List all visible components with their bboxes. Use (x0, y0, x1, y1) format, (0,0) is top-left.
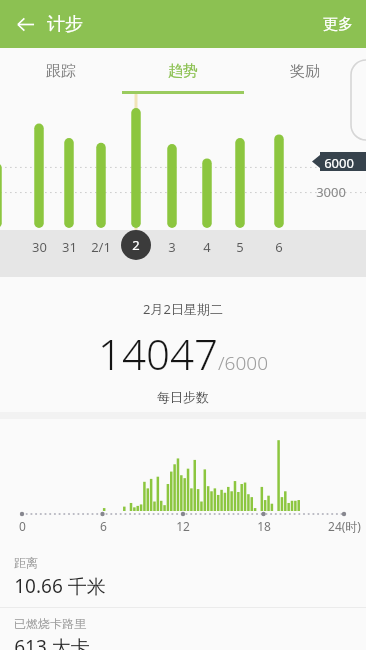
staticText: 2月2日星期二 (143, 300, 223, 318)
staticText: 14047 (98, 325, 218, 382)
staticText: 0 (19, 518, 26, 534)
staticText: 更多 (323, 15, 353, 34)
button[interactable]: 更多 (310, 4, 366, 45)
button[interactable]: 31 (53, 236, 85, 258)
staticText: 4 (203, 238, 211, 256)
staticText: 6 (100, 518, 107, 534)
staticText: 24(时) (328, 518, 361, 534)
button[interactable]: 5 (224, 236, 256, 258)
button[interactable]: 3 (156, 236, 188, 258)
staticText: 2/1 (91, 238, 111, 256)
button[interactable]: 2 (121, 230, 151, 260)
staticText: 计步 (47, 13, 83, 36)
staticText: 10.66 千米 (14, 573, 106, 599)
staticText: 31 (62, 238, 77, 256)
staticText: 18 (257, 518, 271, 534)
button[interactable]: 返回 (6, 5, 44, 43)
staticText: 已燃烧卡路里 (14, 616, 86, 631)
button[interactable]: 趋势 (122, 48, 244, 94)
staticText: 趋势 (168, 62, 198, 81)
staticText: 跟踪 (46, 62, 76, 81)
staticText: 613 大卡 (14, 634, 90, 650)
staticText: 3000 (316, 183, 346, 201)
staticText: 5 (236, 238, 244, 256)
staticText: 3 (168, 238, 176, 256)
staticText: 奖励 (290, 62, 320, 81)
staticText: 2 (132, 236, 140, 254)
button[interactable]: 距离 (0, 547, 366, 607)
staticText: 12 (176, 518, 190, 534)
staticText: /6000 (218, 350, 268, 376)
button[interactable]: 6 (263, 236, 295, 258)
button[interactable]: 跟踪 (0, 48, 122, 94)
button[interactable]: 30 (23, 236, 55, 258)
staticText: 距离 (14, 555, 38, 570)
staticText: 每日步数 (157, 389, 209, 405)
button[interactable]: 奖励 (244, 48, 366, 94)
button[interactable]: 已燃烧卡路里 (0, 607, 366, 650)
staticText: 30 (32, 238, 47, 256)
button[interactable]: 2/1 (85, 236, 117, 258)
staticText: 6000 (324, 154, 354, 172)
button[interactable]: 4 (191, 236, 223, 258)
staticText: 6 (275, 238, 283, 256)
